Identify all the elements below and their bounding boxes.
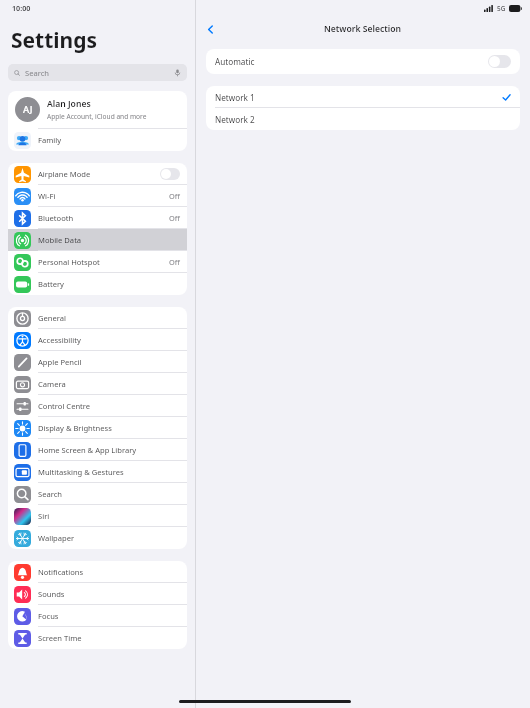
button[interactable]: Control Centre	[8, 395, 187, 417]
staticText: Wi-Fi	[38, 191, 169, 201]
button[interactable]: Screen Time	[8, 627, 187, 649]
staticText: AJ	[23, 103, 33, 116]
staticText: Network Selection	[324, 23, 402, 35]
button[interactable]: General	[8, 307, 187, 329]
staticText: Off	[169, 257, 180, 267]
staticText: Network 2	[215, 114, 255, 125]
button[interactable]: Personal Hotspot	[8, 251, 187, 273]
button[interactable]: Back	[200, 19, 220, 39]
staticText: Settings	[11, 26, 98, 55]
button[interactable]: Battery	[8, 273, 187, 295]
staticText: Control Centre	[38, 401, 180, 411]
button[interactable]: Bluetooth	[8, 207, 187, 229]
button[interactable]: Siri	[8, 505, 187, 527]
staticText: Search	[38, 489, 180, 499]
button[interactable]: Network 2	[206, 108, 520, 130]
staticText: Battery	[38, 279, 180, 289]
staticText: Airplane Mode	[38, 169, 160, 179]
staticText: Screen Time	[38, 633, 180, 643]
button[interactable]: Automatic toggle	[488, 55, 511, 68]
staticText: Multitasking & Gestures	[38, 467, 180, 477]
staticText: Apple Account, iCloud and more	[47, 112, 147, 121]
staticText: Automatic	[215, 56, 488, 67]
button[interactable]: AJ	[8, 91, 187, 128]
staticText: Focus	[38, 611, 180, 621]
staticText: General	[38, 313, 180, 323]
staticText: 5G	[497, 4, 506, 13]
staticText: Display & Brightness	[38, 423, 180, 433]
button[interactable]: Multitasking & Gestures	[8, 461, 187, 483]
button[interactable]: Wi-Fi	[8, 185, 187, 207]
button[interactable]: Display & Brightness	[8, 417, 187, 439]
staticText: Off	[169, 213, 180, 223]
button[interactable]: Family	[8, 129, 187, 151]
button[interactable]: Network 1	[206, 86, 520, 108]
button[interactable]	[160, 168, 180, 180]
staticText: Notifications	[38, 567, 180, 577]
staticText: Camera	[38, 379, 180, 389]
staticText: Alan Jones	[47, 98, 91, 110]
staticText: Sounds	[38, 589, 180, 599]
staticText: Bluetooth	[38, 213, 169, 223]
button[interactable]: Camera	[8, 373, 187, 395]
staticText: Accessibility	[38, 335, 180, 345]
button[interactable]: Focus	[8, 605, 187, 627]
button[interactable]: Wallpaper	[8, 527, 187, 549]
button[interactable]: Sounds	[8, 583, 187, 605]
staticText: Home Screen & App Library	[38, 445, 180, 455]
staticText: Family	[38, 135, 62, 145]
staticText: Mobile Data	[38, 235, 180, 245]
button[interactable]: Notifications	[8, 561, 187, 583]
button[interactable]: Automatic	[206, 49, 520, 74]
staticText: Network 1	[215, 92, 502, 103]
staticText: Off	[169, 191, 180, 201]
staticText: 10:00	[12, 3, 31, 13]
button[interactable]: Airplane Mode	[8, 163, 187, 185]
button[interactable]: Search	[8, 64, 187, 81]
staticText: Wallpaper	[38, 533, 180, 543]
button[interactable]: Home Screen & App Library	[8, 439, 187, 461]
button[interactable]: Accessibility	[8, 329, 187, 351]
button[interactable]: Mobile Data	[8, 229, 187, 251]
button[interactable]: Apple Pencil	[8, 351, 187, 373]
staticText: Siri	[38, 511, 180, 521]
button[interactable]: Search	[8, 483, 187, 505]
staticText: Personal Hotspot	[38, 257, 169, 267]
staticText: Search	[25, 68, 173, 78]
staticText: Apple Pencil	[38, 357, 180, 367]
